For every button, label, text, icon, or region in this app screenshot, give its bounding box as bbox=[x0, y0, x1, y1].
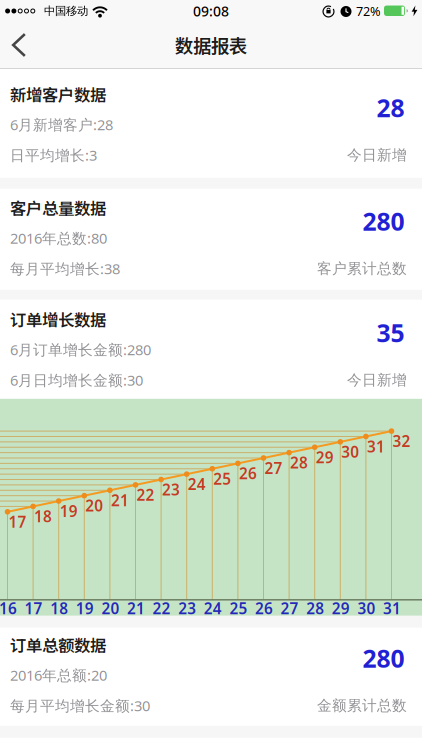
staticText: 18 bbox=[34, 506, 52, 527]
staticText: 29 bbox=[332, 598, 350, 619]
staticText: 26 bbox=[255, 598, 273, 619]
staticText: 72% bbox=[356, 2, 381, 20]
staticText: 21 bbox=[127, 598, 145, 619]
staticText: 22 bbox=[153, 598, 171, 619]
staticText: 26 bbox=[239, 463, 257, 484]
staticText: 22 bbox=[136, 484, 154, 505]
staticText: 日平均增长:3 bbox=[10, 145, 97, 165]
staticText: 28 bbox=[290, 452, 308, 473]
staticText: 17 bbox=[8, 511, 26, 532]
staticText: 30 bbox=[341, 441, 359, 462]
staticText: 客户总量数据 bbox=[10, 196, 106, 219]
staticText: 31 bbox=[383, 598, 401, 619]
staticText: 每月平均增长:38 bbox=[10, 259, 120, 279]
staticText: 23 bbox=[178, 598, 196, 619]
staticText: 29 bbox=[316, 447, 334, 468]
staticText: 订单增长数据 bbox=[10, 307, 106, 331]
staticText: 每月平均增长金额:30 bbox=[10, 696, 150, 716]
staticText: 数据报表 bbox=[175, 32, 247, 58]
staticText: 24 bbox=[188, 474, 206, 495]
staticText: 新增客户数据 bbox=[10, 82, 106, 106]
staticText: 32 bbox=[392, 431, 410, 452]
staticText: 2016年总额:20 bbox=[10, 665, 107, 685]
staticText: 6月新增客户:28 bbox=[10, 115, 113, 135]
staticText: 17 bbox=[25, 598, 43, 619]
staticText: 25 bbox=[229, 598, 247, 619]
staticText: 2016年总数:80 bbox=[10, 228, 107, 248]
staticText: 28 bbox=[306, 598, 324, 619]
staticText: 6月日均增长金额:30 bbox=[10, 370, 143, 390]
staticText: 30 bbox=[357, 598, 375, 619]
staticText: 21 bbox=[111, 490, 129, 511]
staticText: 19 bbox=[76, 598, 94, 619]
staticText: 20 bbox=[101, 598, 119, 619]
staticText: 20 bbox=[85, 495, 103, 516]
staticText: 25 bbox=[213, 468, 231, 489]
staticText: 今日新增 bbox=[347, 371, 407, 389]
staticText: 35 bbox=[376, 316, 404, 350]
staticText: 中国移动 bbox=[44, 4, 88, 18]
staticText: 280 bbox=[362, 204, 404, 238]
staticText: 金额累计总数 bbox=[317, 696, 407, 715]
staticText: 280 bbox=[362, 641, 404, 675]
staticText: 订单总额数据 bbox=[10, 633, 106, 656]
staticText: 23 bbox=[162, 479, 180, 500]
staticText: 18 bbox=[50, 598, 68, 619]
staticText: 27 bbox=[264, 458, 282, 478]
staticText: 客户累计总数 bbox=[317, 259, 407, 278]
staticText: 31 bbox=[367, 436, 385, 457]
staticText: 今日新增 bbox=[347, 146, 407, 164]
staticText: 16 bbox=[0, 598, 17, 619]
button[interactable]: Back bbox=[0, 22, 27, 67]
staticText: 09:08 bbox=[193, 1, 229, 21]
staticText: 6月订单增长金额:280 bbox=[10, 340, 151, 360]
staticText: 19 bbox=[60, 501, 78, 521]
staticText: 24 bbox=[204, 598, 222, 619]
staticText: 28 bbox=[376, 91, 404, 125]
staticText: 27 bbox=[281, 598, 299, 619]
